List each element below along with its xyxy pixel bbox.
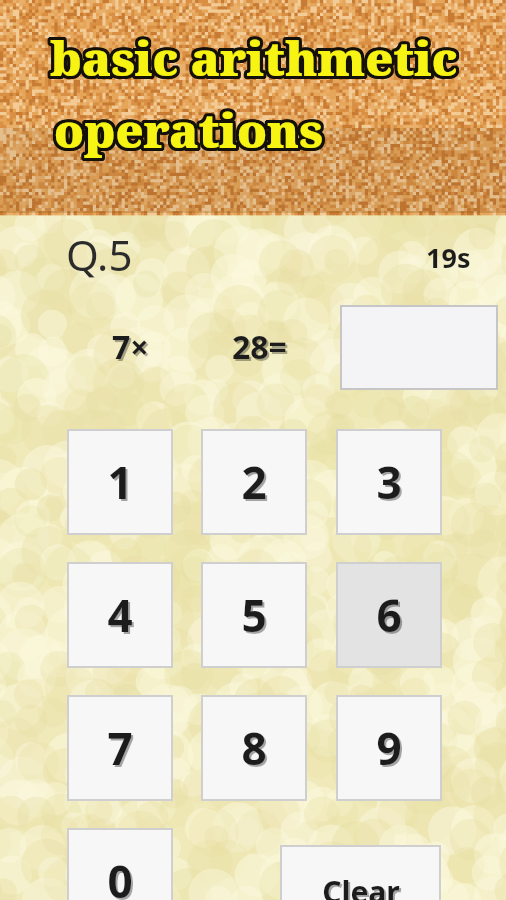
staticText: 7× [114, 327, 151, 371]
staticText: 1 [107, 452, 133, 512]
staticText: operations [55, 95, 324, 159]
staticText: 0 [107, 851, 133, 900]
staticText: basic arithmetic [47, 25, 455, 89]
staticText: Clear [322, 871, 400, 900]
staticText: 9 [378, 720, 404, 780]
staticText: operations [57, 97, 326, 161]
button[interactable]: 4 [68, 563, 172, 667]
button[interactable]: 2 [202, 430, 306, 534]
staticText: basic arithmetic [53, 27, 461, 91]
staticText: 3 [378, 454, 404, 514]
staticText: 2 [241, 452, 267, 512]
staticText: 6 [378, 587, 404, 647]
button[interactable]: 0 [68, 829, 172, 900]
staticText: operations [57, 98, 326, 162]
button[interactable]: 3 [337, 430, 441, 534]
staticText: 7 [107, 718, 133, 778]
staticText: basic arithmetic [48, 23, 456, 87]
staticText: operations [54, 101, 323, 165]
staticText: operations [55, 101, 324, 165]
button[interactable]: 1 [68, 430, 172, 534]
staticText: basic arithmetic [52, 23, 460, 87]
staticText: operations [53, 95, 322, 159]
staticText: 19s [426, 239, 471, 276]
staticText: 9 [376, 718, 402, 778]
staticText: 6 [376, 585, 402, 645]
staticText: basic arithmetic [49, 23, 457, 87]
staticText: operations [54, 95, 323, 159]
staticText: 8 [241, 718, 267, 778]
staticText: operations [56, 101, 325, 165]
button[interactable]: 5 [202, 563, 306, 667]
staticText: basic arithmetic [47, 26, 455, 90]
staticText: 1 [109, 454, 135, 514]
staticText: operations [51, 98, 320, 162]
staticText: basic arithmetic [47, 28, 455, 92]
staticText: Clear [324, 873, 402, 900]
staticText: basic arithmetic [51, 23, 459, 87]
staticText: basic arithmetic [53, 28, 461, 92]
button[interactable]: 8 [202, 696, 306, 800]
staticText: operations [57, 96, 326, 160]
staticText: operations [57, 100, 326, 164]
button[interactable]: 9 [337, 696, 441, 800]
staticText: basic arithmetic [53, 26, 461, 90]
staticText: basic arithmetic [49, 29, 457, 93]
staticText: operations [52, 95, 321, 159]
staticText: operations [57, 99, 326, 163]
staticText: 4 [109, 587, 135, 647]
staticText: basic arithmetic [47, 24, 455, 88]
staticText: operations [53, 101, 322, 165]
staticText: basic arithmetic [50, 29, 458, 93]
staticText: 28= [232, 325, 287, 369]
staticText: 4 [107, 585, 133, 645]
button[interactable]: 7 [68, 696, 172, 800]
button[interactable]: Answer field [341, 306, 497, 389]
staticText: basic arithmetic [53, 25, 461, 89]
staticText: operations [51, 100, 320, 164]
staticText: basic arithmetic [50, 23, 458, 87]
staticText: operations [51, 96, 320, 160]
staticText: basic arithmetic [52, 29, 460, 93]
staticText: basic arithmetic [51, 29, 459, 93]
staticText: 8 [243, 720, 269, 780]
staticText: Q.5 [66, 226, 133, 283]
staticText: basic arithmetic [53, 24, 461, 88]
staticText: operations [51, 97, 320, 161]
staticText: basic arithmetic [48, 29, 456, 93]
staticText: 28= [234, 327, 289, 371]
staticText: operations [54, 98, 323, 162]
staticText: operations [52, 101, 321, 165]
staticText: 0 [109, 853, 135, 900]
staticText: operations [51, 99, 320, 163]
staticText: 5 [243, 587, 269, 647]
staticText: operations [56, 95, 325, 159]
button[interactable]: 6 [337, 563, 441, 667]
staticText: 5 [241, 585, 267, 645]
staticText: basic arithmetic [50, 26, 458, 90]
staticText: 7 [109, 720, 135, 780]
staticText: 2 [243, 454, 269, 514]
staticText: 3 [376, 452, 402, 512]
staticText: 7× [112, 325, 149, 369]
button[interactable]: Clear [281, 846, 440, 900]
staticText: basic arithmetic [47, 27, 455, 91]
